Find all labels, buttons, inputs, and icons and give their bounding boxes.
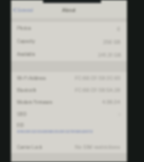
staticText: Available (17, 52, 36, 57)
staticText: Photos (17, 26, 32, 31)
button[interactable]: Carrier Lock (11, 141, 127, 153)
staticText: Carrier Lock (17, 145, 43, 150)
staticText: FC:66:CF:58:5A:28 (75, 87, 121, 93)
staticText: 4.98.04 (102, 99, 121, 105)
staticText: Capacity (17, 39, 36, 44)
button[interactable]: Available (11, 48, 127, 61)
staticText: 0 (117, 26, 121, 32)
button[interactable]: Photos (11, 22, 127, 35)
staticText: Wi-Fi Address (17, 76, 46, 81)
button[interactable]: EID (11, 120, 127, 141)
staticText: 256 GB (103, 39, 121, 45)
staticText: Modem Firmware (17, 100, 53, 105)
staticText: 89049032004888820490321958648012 (17, 129, 93, 134)
staticText: FC:66:CF:59:3C:65 (75, 75, 121, 81)
staticText: EID (17, 123, 24, 128)
button[interactable]: Wi-Fi Address (11, 72, 127, 84)
button[interactable]: Bluetooth (11, 84, 127, 96)
staticText: Bluetooth (17, 88, 37, 93)
button[interactable]: SEID (11, 108, 127, 120)
button[interactable]: Capacity (11, 35, 127, 48)
staticText: About (62, 7, 76, 13)
staticText: General (17, 8, 33, 13)
button[interactable]: General (11, 5, 35, 15)
staticText: No SIM restrictions (75, 144, 121, 150)
staticText: SEID (17, 112, 27, 117)
staticText: 241.31 GB (98, 52, 121, 58)
button[interactable]: Modem Firmware (11, 96, 127, 108)
